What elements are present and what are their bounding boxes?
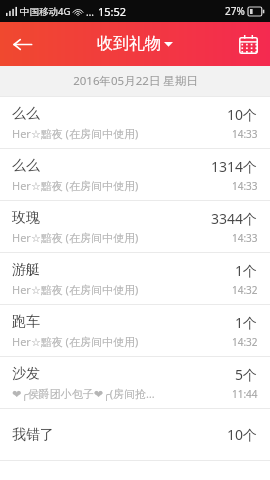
- staticText: 2016年05月22日 星期日: [73, 73, 198, 89]
- staticText: ❤‍╭侯爵团小包子❤‍╭(房间抢…: [12, 386, 155, 401]
- button[interactable]: 玫瑰: [0, 201, 270, 252]
- staticText: 收到礼物: [97, 34, 161, 54]
- staticText: 游艇: [12, 261, 40, 279]
- button[interactable]: 跑车: [0, 305, 270, 356]
- staticText: 么么: [12, 105, 40, 123]
- button[interactable]: 沙发: [0, 357, 270, 408]
- staticText: 1个: [235, 261, 258, 280]
- staticText: 中国移动4G: [20, 5, 71, 18]
- button[interactable]: 收到礼物: [97, 34, 173, 54]
- staticText: 玫瑰: [12, 209, 40, 227]
- staticText: 11:44: [232, 387, 258, 401]
- staticText: 1个: [235, 313, 258, 332]
- button[interactable]: 我错了: [0, 409, 270, 460]
- staticText: 么么: [12, 157, 40, 175]
- button[interactable]: 游艇: [0, 253, 270, 304]
- staticText: Her☆黯夜 (在房间中使用): [12, 334, 139, 349]
- staticText: 10个: [227, 105, 258, 124]
- staticText: 14:33: [232, 127, 258, 141]
- staticText: 10个: [227, 425, 258, 444]
- staticText: 1314个: [211, 157, 258, 176]
- staticText: Her☆黯夜 (在房间中使用): [12, 126, 139, 141]
- staticText: Her☆黯夜 (在房间中使用): [12, 178, 139, 193]
- staticText: Her☆黯夜 (在房间中使用): [12, 230, 139, 245]
- staticText: …: [86, 5, 94, 19]
- staticText: 3344个: [211, 209, 258, 228]
- staticText: Her☆黯夜 (在房间中使用): [12, 282, 139, 297]
- staticText: 15:52: [98, 4, 127, 19]
- staticText: 5个: [235, 365, 258, 384]
- staticText: 跑车: [12, 313, 40, 331]
- button[interactable]: Back: [0, 22, 44, 66]
- button[interactable]: 么么: [0, 97, 270, 148]
- staticText: 沙发: [12, 365, 40, 383]
- staticText: 14:33: [232, 231, 258, 245]
- staticText: 我错了: [12, 426, 54, 444]
- button[interactable]: Calendar: [226, 22, 270, 66]
- staticText: 14:32: [232, 283, 258, 297]
- staticText: 27%: [225, 4, 245, 18]
- staticText: 14:33: [232, 179, 258, 193]
- button[interactable]: 么么: [0, 149, 270, 200]
- staticText: 14:32: [232, 335, 258, 349]
